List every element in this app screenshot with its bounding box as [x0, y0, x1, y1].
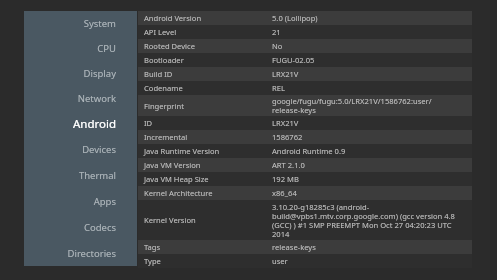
staticText: Network — [77, 92, 116, 105]
staticText: Java VM Version — [144, 160, 272, 170]
button[interactable]: Network — [24, 86, 137, 111]
button[interactable]: Fingerprint — [138, 95, 472, 116]
staticText: Tags — [144, 242, 272, 252]
staticText: FUGU-02.05 — [272, 55, 468, 65]
staticText: Kernel Version — [144, 215, 272, 225]
staticText: 1586762 — [272, 132, 468, 142]
button[interactable]: Rooted Device — [138, 39, 472, 53]
staticText: LRX21V — [272, 69, 468, 79]
button[interactable]: Java VM Heap Size — [138, 172, 472, 186]
staticText: 21 — [272, 27, 468, 37]
button[interactable]: Incremental — [138, 130, 472, 144]
staticText: Directories — [67, 247, 116, 260]
staticText: LRX21V — [272, 118, 468, 128]
button[interactable]: Apps — [24, 188, 137, 214]
button[interactable]: Directories — [24, 240, 137, 266]
button[interactable]: Type — [138, 254, 472, 268]
staticText: 192 MB — [272, 174, 468, 184]
button[interactable]: Build ID — [138, 67, 472, 81]
button[interactable]: Android — [24, 111, 137, 136]
button[interactable]: Java Runtime Version — [138, 144, 472, 158]
staticText: Android — [72, 116, 116, 132]
staticText: Java VM Heap Size — [144, 174, 272, 184]
staticText: x86_64 — [272, 188, 468, 198]
staticText: CPU — [97, 42, 116, 55]
staticText: google/fugu/fugu:5.0/LRX21V/1586762:user… — [272, 96, 468, 115]
button[interactable]: Kernel Architecture — [138, 186, 472, 200]
staticText: Bootloader — [144, 55, 272, 65]
staticText: API Level — [144, 27, 272, 37]
staticText: Display — [83, 67, 116, 80]
staticText: Fingerprint — [144, 101, 272, 111]
button[interactable]: Codename — [138, 81, 472, 95]
button[interactable]: CPU — [24, 36, 137, 61]
staticText: 3.10.20-g18285c3 (android- build@vpbs1.m… — [272, 202, 468, 239]
staticText: Codecs — [83, 221, 116, 234]
button[interactable]: Codecs — [24, 214, 137, 240]
staticText: ID — [144, 118, 272, 128]
staticText: Java Runtime Version — [144, 146, 272, 156]
staticText: Devices — [82, 143, 116, 156]
staticText: Incremental — [144, 132, 272, 142]
button[interactable]: Kernel Version — [138, 200, 472, 240]
staticText: No — [272, 41, 468, 51]
staticText: REL — [272, 83, 468, 93]
staticText: Android Runtime 0.9 — [272, 146, 468, 156]
staticText: Kernel Architecture — [144, 188, 272, 198]
staticText: Thermal — [78, 169, 116, 182]
staticText: release-keys — [272, 242, 468, 252]
staticText: ART 2.1.0 — [272, 160, 468, 170]
staticText: Type — [144, 256, 272, 266]
staticText: 5.0 (Lollipop) — [272, 13, 468, 23]
staticText: user — [272, 256, 468, 266]
staticText: System — [83, 17, 116, 30]
staticText: Android Version — [144, 13, 272, 23]
button[interactable]: Display — [24, 61, 137, 86]
button[interactable]: Tags — [138, 240, 472, 254]
staticText: Rooted Device — [144, 41, 272, 51]
staticText: Codename — [144, 83, 272, 93]
button[interactable]: API Level — [138, 25, 472, 39]
button[interactable]: System — [24, 11, 137, 36]
staticText: Apps — [93, 195, 116, 208]
button[interactable]: Android Version — [138, 11, 472, 25]
button[interactable]: Thermal — [24, 162, 137, 188]
button[interactable]: Java VM Version — [138, 158, 472, 172]
button[interactable]: Devices — [24, 136, 137, 162]
staticText: Build ID — [144, 69, 272, 79]
button[interactable]: ID — [138, 116, 472, 130]
button[interactable]: Bootloader — [138, 53, 472, 67]
